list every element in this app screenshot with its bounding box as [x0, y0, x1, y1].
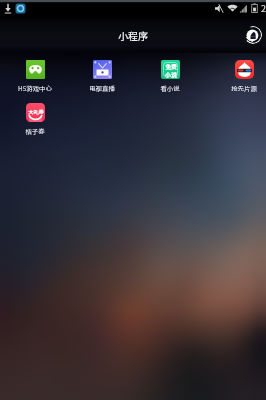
- staticText: 抢先片源: [231, 84, 257, 93]
- staticText: 看小说: [160, 84, 180, 93]
- button[interactable]: Early Movies: [216, 60, 266, 93]
- staticText: 小说: [165, 70, 177, 78]
- staticText: 2: [261, 2, 266, 15]
- button[interactable]: TV Live: [74, 60, 130, 93]
- staticText: 电视直播: [89, 84, 115, 93]
- staticText: 桔子券: [25, 127, 45, 136]
- staticText: H5游戏中心: [18, 84, 52, 93]
- button[interactable]: Profile: [244, 26, 262, 44]
- staticText: 大礼券: [28, 108, 44, 116]
- button[interactable]: Read Novels: [142, 60, 198, 93]
- staticText: 小程序: [118, 28, 148, 42]
- button[interactable]: H5 Game Center: [7, 60, 63, 93]
- staticText: 免费: [165, 62, 177, 70]
- button[interactable]: Coupons: [7, 103, 63, 136]
